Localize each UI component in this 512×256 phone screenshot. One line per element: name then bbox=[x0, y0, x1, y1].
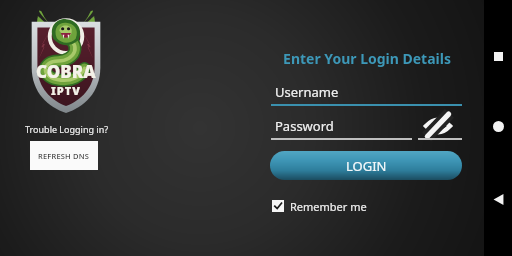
staticText: Username bbox=[275, 83, 339, 101]
staticText: IPTV bbox=[51, 83, 81, 98]
button[interactable]: Back bbox=[484, 185, 512, 213]
button[interactable]: Recent apps bbox=[484, 42, 512, 70]
button[interactable]: Show password bbox=[415, 114, 462, 140]
button[interactable]: LOGIN bbox=[270, 151, 462, 180]
button[interactable]: Remember me bbox=[272, 196, 367, 216]
staticText: REFRESH DNS bbox=[38, 151, 90, 161]
staticText: Enter Your Login Details bbox=[283, 49, 451, 68]
staticText: Password bbox=[275, 117, 334, 135]
button[interactable]: Password bbox=[271, 116, 412, 140]
button[interactable]: Username bbox=[271, 82, 462, 106]
button[interactable]: REFRESH DNS bbox=[30, 141, 98, 170]
staticText: COBRA bbox=[36, 60, 96, 83]
staticText: Remember me bbox=[290, 199, 367, 214]
button[interactable]: Home bbox=[484, 112, 512, 140]
staticText: LOGIN bbox=[346, 157, 387, 175]
staticText: Trouble Logging in? bbox=[25, 123, 109, 135]
